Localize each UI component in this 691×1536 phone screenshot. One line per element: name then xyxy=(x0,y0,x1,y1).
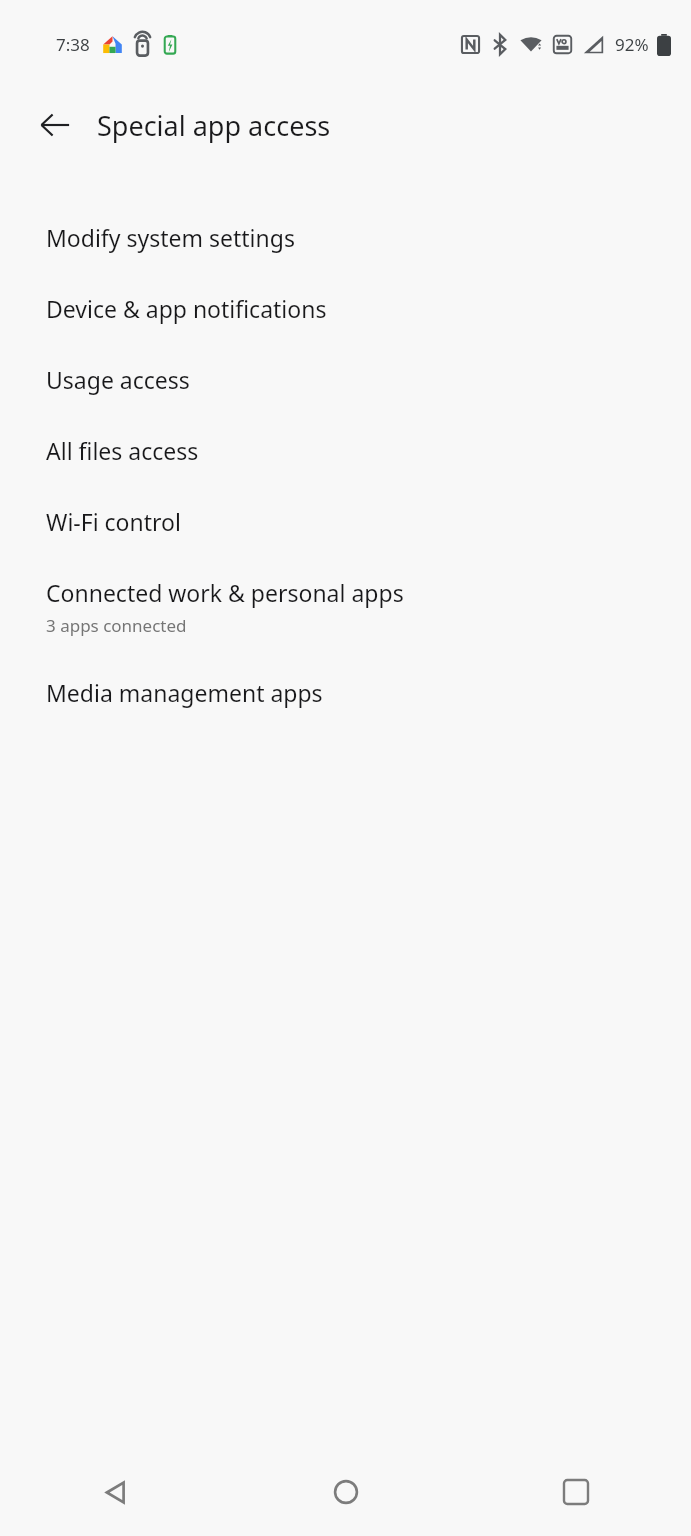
button[interactable]: Usage access xyxy=(0,344,691,415)
staticText: Device & app notifications xyxy=(46,293,327,324)
staticText: Special app access xyxy=(97,107,331,144)
button[interactable]: Back xyxy=(78,1455,152,1529)
staticText: Wi-Fi control xyxy=(46,506,181,537)
button[interactable]: All files access xyxy=(0,415,691,486)
button[interactable]: Modify system settings xyxy=(0,202,691,273)
staticText: 92% xyxy=(615,33,649,56)
staticText: All files access xyxy=(46,435,199,466)
button[interactable]: Back xyxy=(28,98,82,152)
button[interactable]: Home xyxy=(309,1455,383,1529)
button[interactable]: Media management apps xyxy=(0,657,691,728)
staticText: 3 apps connected xyxy=(46,614,187,637)
button[interactable]: Wi-Fi control xyxy=(0,486,691,557)
staticText: Media management apps xyxy=(46,677,323,708)
staticText: Modify system settings xyxy=(46,222,295,253)
button[interactable]: Device & app notifications xyxy=(0,273,691,344)
staticText: Usage access xyxy=(46,364,190,395)
button[interactable]: Recent apps xyxy=(539,1455,613,1529)
staticText: Connected work & personal apps xyxy=(46,577,404,608)
button[interactable]: Connected work & personal apps xyxy=(0,557,691,657)
staticText: 7:38 xyxy=(56,33,90,56)
